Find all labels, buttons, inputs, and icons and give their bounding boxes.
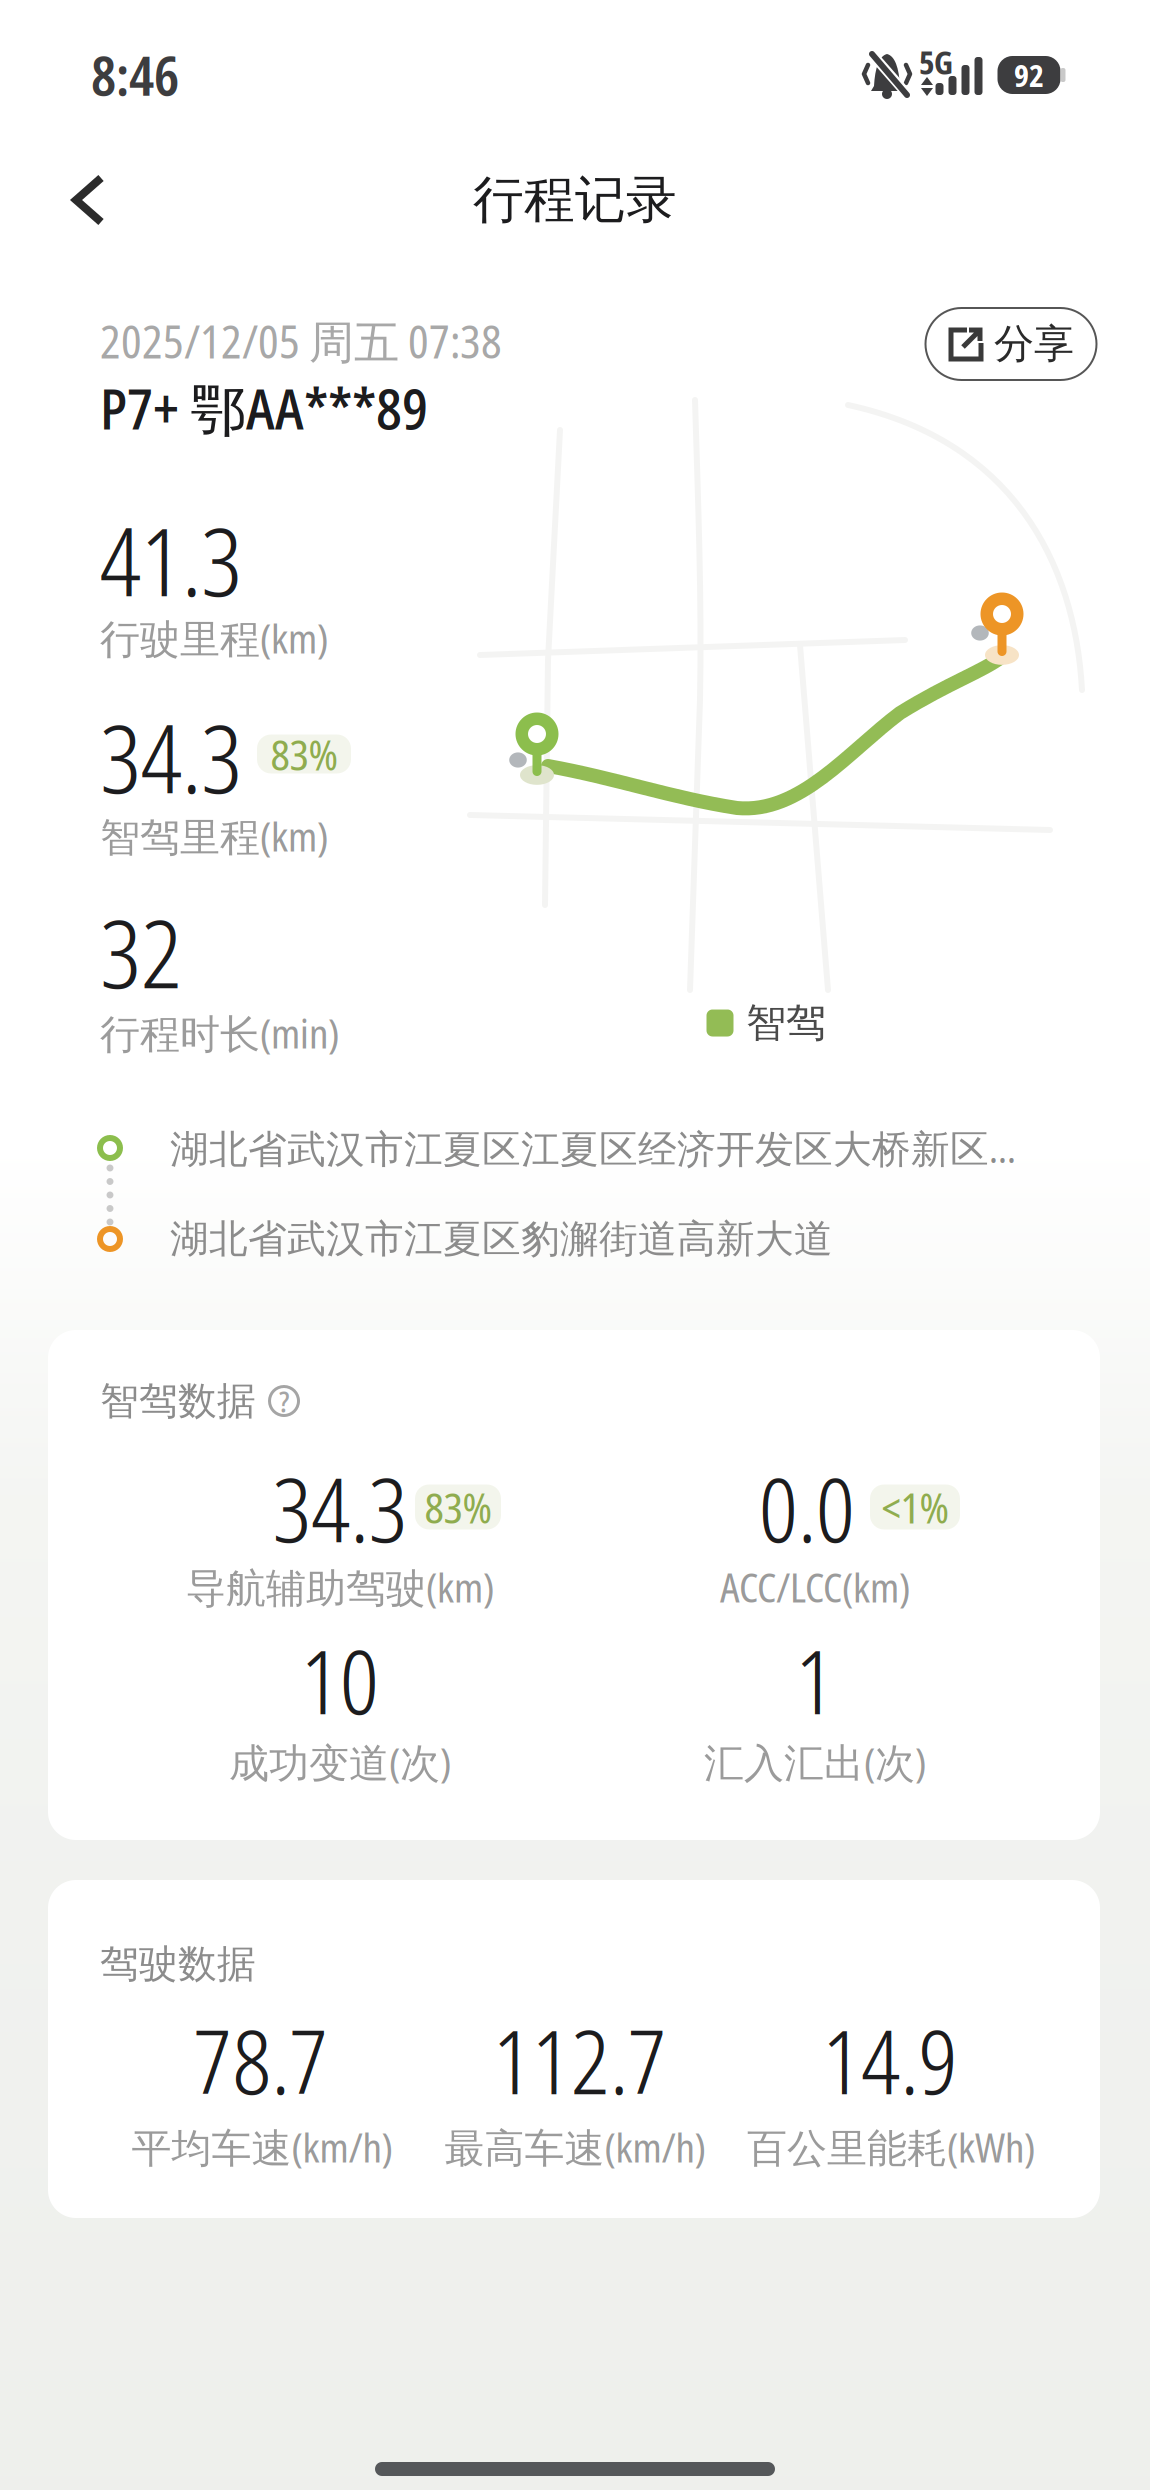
staticText: 汇入汇出(次): [704, 1735, 926, 1789]
staticText: 行程记录: [473, 168, 677, 232]
staticText: 湖北省武汉市江夏区江夏区经济开发区大桥新区...: [170, 1122, 1016, 1174]
staticText: 平均车速(km/h): [131, 2120, 392, 2174]
staticText: 34.3: [272, 1448, 407, 1568]
staticText: ?: [279, 1381, 289, 1421]
staticText: 78.7: [193, 2000, 328, 2120]
button[interactable]: 分享: [925, 308, 1096, 380]
staticText: 0.0: [759, 1448, 855, 1568]
staticText: 最高车速(km/h): [444, 2120, 705, 2174]
staticText: 导航辅助驾驶(km): [186, 1560, 494, 1614]
staticText: 行驶里程(km): [100, 611, 328, 665]
staticText: 智驾: [746, 998, 826, 1048]
staticText: 5G: [919, 40, 953, 84]
button[interactable]: [68, 173, 110, 227]
staticText: 83%: [270, 725, 337, 783]
staticText: 112.7: [493, 2000, 667, 2120]
staticText: ACC/LCC(km): [720, 1560, 910, 1614]
staticText: 智驾数据: [100, 1377, 256, 1425]
staticText: 34.3: [100, 693, 242, 820]
button[interactable]: ?: [268, 1385, 300, 1417]
staticText: 41.3: [100, 496, 242, 623]
staticText: P7+ 鄂AA***89: [100, 370, 428, 446]
staticText: 8:46: [91, 39, 179, 111]
staticText: 32: [100, 888, 182, 1015]
staticText: 驾驶数据: [100, 1940, 256, 1988]
staticText: 83%: [424, 1478, 491, 1536]
staticText: 92: [1014, 54, 1044, 96]
staticText: 14.9: [822, 2000, 957, 2120]
staticText: 百公里能耗(kWh): [747, 2120, 1035, 2174]
staticText: 分享: [994, 319, 1074, 369]
staticText: 智驾里程(km): [100, 809, 328, 863]
staticText: 湖北省武汉市江夏区豹澥街道高新大道: [170, 1215, 833, 1263]
staticText: 10: [301, 1620, 379, 1740]
staticText: <1%: [881, 1478, 948, 1536]
staticText: 2025/12/05 周五 07:38: [100, 310, 502, 372]
staticText: 行程时长(min): [100, 1006, 339, 1060]
staticText: 1: [795, 1620, 834, 1740]
staticText: 成功变道(次): [229, 1735, 451, 1789]
